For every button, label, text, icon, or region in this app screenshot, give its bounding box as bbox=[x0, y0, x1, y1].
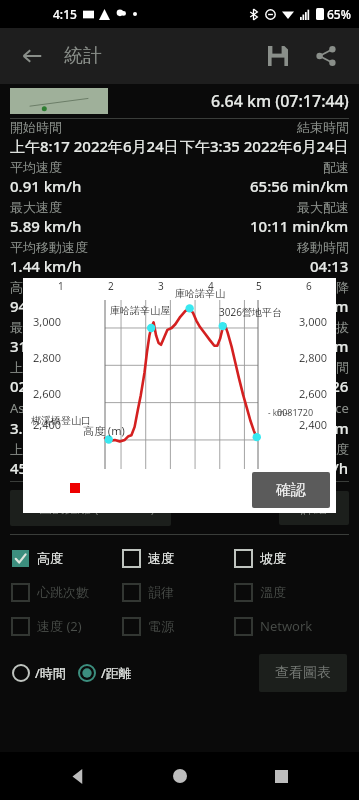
staticText: 時間 bbox=[323, 359, 349, 375]
button[interactable]: /距離 bbox=[78, 664, 132, 682]
staticText: 0.91 km/h bbox=[10, 176, 82, 196]
staticText: 配速 bbox=[323, 159, 349, 175]
staticText: 結束時間 bbox=[297, 119, 349, 135]
staticText: /時間 bbox=[35, 664, 66, 682]
button[interactable]: 速度 bbox=[123, 541, 235, 575]
staticText: 1.44 km/h bbox=[10, 256, 82, 276]
staticText: 電源 bbox=[148, 618, 174, 634]
staticText: 庫哈諾辛山屋 bbox=[110, 304, 170, 317]
staticText: 下降速度 bbox=[297, 441, 349, 457]
staticText: 04:26 bbox=[310, 376, 349, 396]
staticText: - km-- bbox=[268, 407, 290, 418]
staticText: 統計 bbox=[64, 44, 102, 68]
staticText: 943 m bbox=[10, 296, 54, 316]
staticText: 0081720 bbox=[277, 406, 314, 418]
staticText: 韻律 bbox=[148, 584, 174, 600]
staticText: 最大速度 bbox=[10, 199, 62, 215]
staticText: 02:26 bbox=[10, 376, 49, 396]
button[interactable]: 詳細 bbox=[279, 491, 349, 525]
staticText: 高度 (m) bbox=[83, 423, 125, 438]
button[interactable]: Back bbox=[12, 36, 52, 76]
staticText: 10:11 min/km bbox=[250, 216, 349, 236]
button[interactable]: Home bbox=[156, 752, 204, 800]
button[interactable]: 韻律 bbox=[123, 575, 235, 609]
staticText: 最大配速 bbox=[297, 199, 349, 215]
button[interactable]: 溫度 bbox=[235, 575, 347, 609]
staticText: 開始時間 bbox=[10, 119, 62, 135]
staticText: 2,800 bbox=[33, 350, 62, 365]
button[interactable]: 一圈的距離 (1.00 KM) bbox=[10, 490, 171, 526]
button[interactable]: 速度 (2) bbox=[12, 609, 123, 643]
staticText: 平均移動速度 bbox=[10, 239, 88, 255]
staticText: 下降 bbox=[323, 279, 349, 295]
staticText: 5 bbox=[256, 279, 262, 293]
staticText: 高度 bbox=[10, 279, 36, 295]
staticText: 上午8:17 2022年6月24日 bbox=[10, 136, 179, 156]
staticText: /距離 bbox=[101, 664, 132, 682]
staticText: 下午3:35 2022年6月24日 bbox=[180, 136, 349, 156]
staticText: 65% bbox=[327, 6, 351, 22]
button[interactable]: 心跳次數 bbox=[12, 575, 123, 609]
staticText: 3 bbox=[158, 279, 164, 293]
staticText: 3026營地平台 bbox=[219, 305, 282, 319]
staticText: 2,600 bbox=[33, 386, 62, 401]
button[interactable]: 確認 bbox=[252, 472, 330, 508]
staticText: 6 bbox=[306, 279, 312, 293]
staticText: 上升速度 bbox=[10, 441, 62, 457]
staticText: 5.89 km/h bbox=[10, 216, 82, 236]
staticText: 6.64 km (07:17:44) bbox=[211, 90, 349, 112]
button[interactable]: Save bbox=[257, 35, 299, 77]
staticText: 2,400 bbox=[299, 417, 328, 432]
staticText: 海拔 bbox=[323, 319, 349, 335]
staticText: 高度 bbox=[37, 550, 63, 566]
staticText: 溫度 bbox=[260, 584, 286, 600]
staticText: 4:15 bbox=[53, 6, 77, 22]
staticText: 3,402 m bbox=[292, 336, 349, 356]
staticText: 420.23 m/h bbox=[268, 458, 349, 478]
staticText: 速度 (2) bbox=[37, 617, 82, 635]
staticText: 451.78 m/h bbox=[10, 458, 91, 478]
staticText: 確認 bbox=[276, 481, 306, 500]
staticText: 2,800 bbox=[299, 350, 328, 365]
staticText: 梆溪橋登山口 bbox=[31, 414, 91, 427]
staticText: 4 bbox=[208, 279, 214, 293]
staticText: 移動時間 bbox=[297, 239, 349, 255]
staticText: 3,000 bbox=[299, 314, 328, 329]
staticText: 2.1 km bbox=[301, 418, 349, 438]
staticText: 庫哈諾辛山 bbox=[175, 287, 225, 300]
staticText: 3100 m bbox=[10, 336, 63, 356]
staticText: 2 bbox=[108, 279, 114, 293]
staticText: 3.33 bbox=[10, 418, 40, 438]
button[interactable]: 高度 bbox=[12, 541, 123, 575]
button[interactable]: 坡度 bbox=[235, 541, 347, 575]
staticText: Network bbox=[260, 617, 313, 635]
button[interactable]: /時間 bbox=[12, 664, 66, 682]
button[interactable]: 查看圖表 bbox=[259, 654, 347, 692]
staticText: 最低海拔 bbox=[10, 319, 62, 335]
staticText: 65:56 min/km bbox=[250, 176, 349, 196]
button[interactable]: 電源 bbox=[123, 609, 235, 643]
button[interactable]: Recents bbox=[257, 752, 305, 800]
staticText: Pace bbox=[320, 399, 349, 417]
staticText: 2,400 bbox=[33, 417, 62, 432]
staticText: 速度 bbox=[148, 550, 174, 566]
staticText: 一圈的距離 (1.00 KM) bbox=[26, 499, 155, 517]
staticText: 詳細 bbox=[301, 500, 327, 516]
staticText: 查看圖表 bbox=[275, 664, 331, 682]
staticText: 1 bbox=[58, 279, 64, 293]
button[interactable]: Back bbox=[54, 752, 102, 800]
staticText: 心跳次數 bbox=[37, 584, 89, 600]
staticText: 上升 bbox=[10, 359, 36, 375]
staticText: 04:13 bbox=[310, 256, 349, 276]
button[interactable]: Network bbox=[235, 609, 347, 643]
staticText: Ascent bbox=[10, 399, 51, 417]
staticText: 平均速度 bbox=[10, 159, 62, 175]
staticText: -1,234 m bbox=[287, 296, 349, 316]
staticText: 3,000 bbox=[33, 314, 62, 329]
staticText: 坡度 bbox=[260, 550, 286, 566]
staticText: 2,600 bbox=[299, 386, 328, 401]
button[interactable]: Share bbox=[305, 35, 347, 77]
